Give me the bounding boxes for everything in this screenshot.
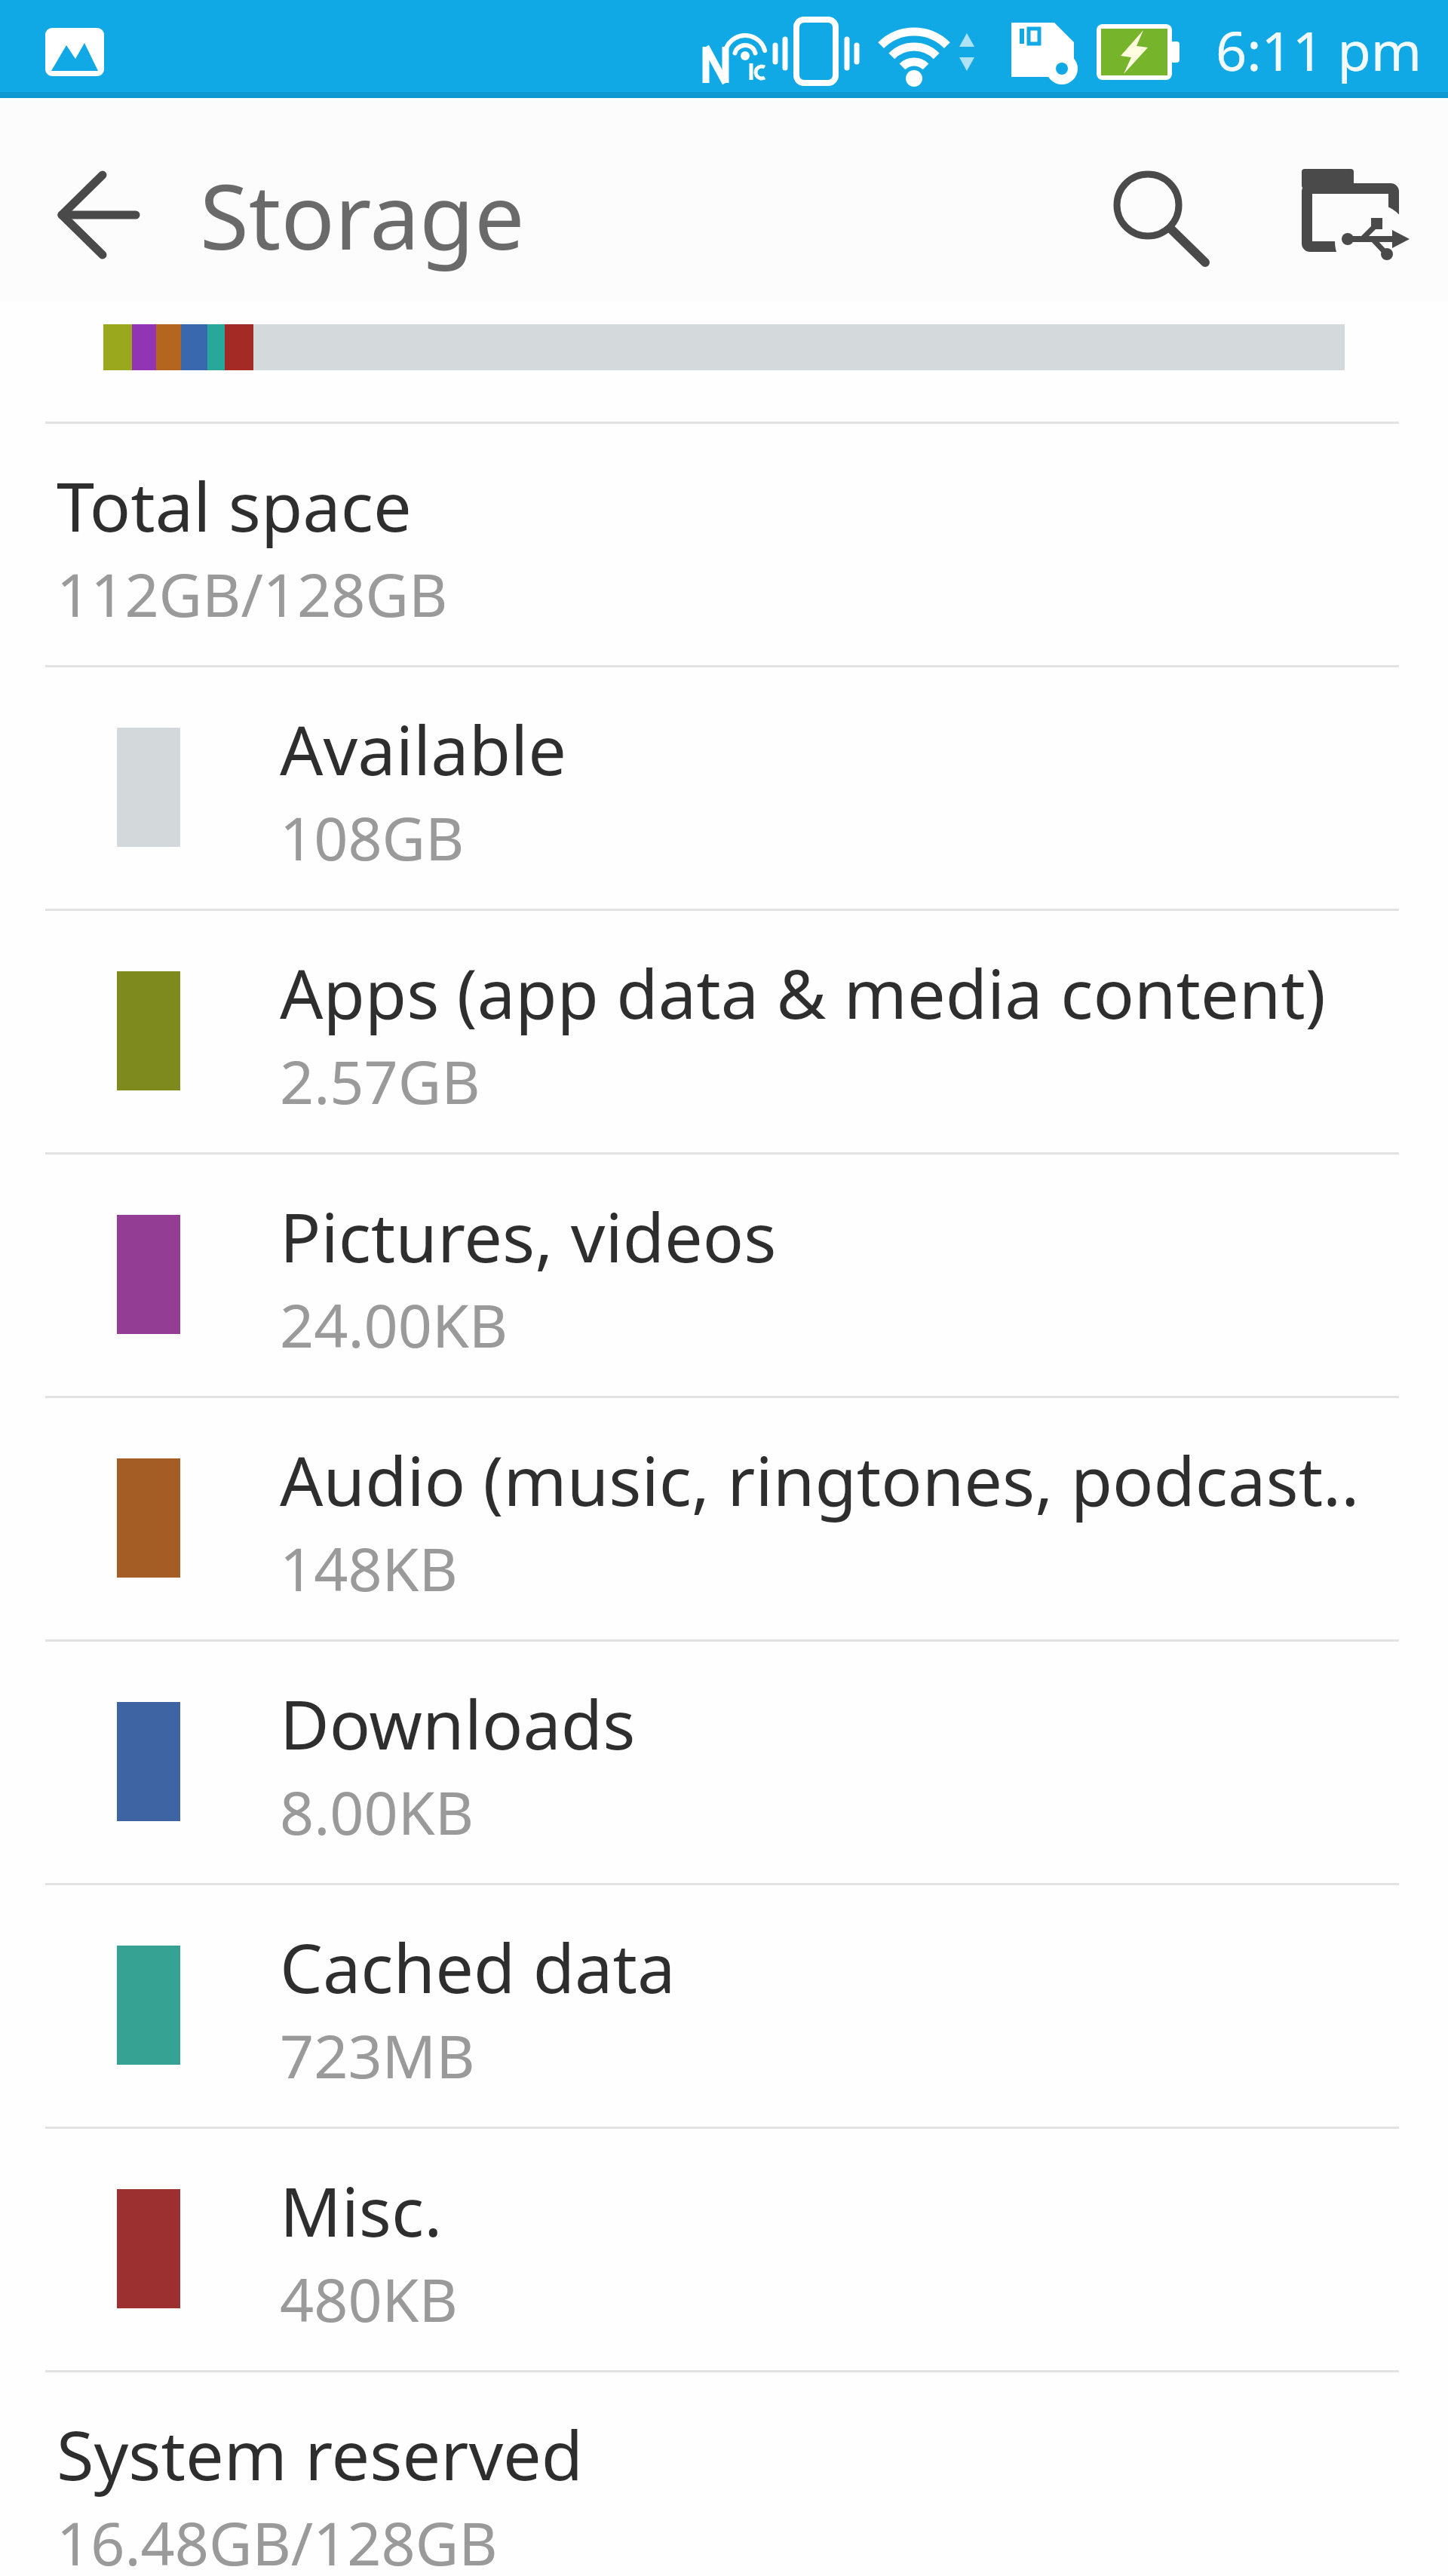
staticText: 16.48GB/128GB — [57, 2502, 498, 2576]
button[interactable]: Apps (app data & media content) — [0, 909, 1448, 1152]
staticText: 723MB — [280, 2015, 475, 2096]
button[interactable]: Audio (music, ringtones, podcast.. — [0, 1396, 1448, 1639]
staticText: 24.00KB — [280, 1284, 508, 1366]
button[interactable] — [1275, 147, 1425, 275]
staticText: Total space — [57, 459, 412, 552]
staticText: 480KB — [280, 2259, 458, 2340]
button[interactable] — [1090, 147, 1214, 275]
staticText: Cached data — [280, 1921, 676, 2013]
staticText: 108GB — [280, 797, 465, 879]
staticText: 2.57GB — [280, 1041, 480, 1122]
staticText: Misc. — [280, 2164, 443, 2257]
button[interactable]: Total space — [0, 422, 1448, 665]
staticText: Downloads — [280, 1677, 636, 1770]
staticText: 6:11 pm — [1216, 13, 1422, 87]
staticText: 8.00KB — [280, 1771, 474, 1853]
staticText: Audio (music, ringtones, podcast.. — [280, 1434, 1360, 1526]
staticText: Available — [280, 703, 566, 796]
button[interactable]: System reserved — [0, 2370, 1448, 2576]
staticText: 112GB/128GB — [57, 554, 448, 635]
staticText: 148KB — [280, 1528, 458, 1609]
staticText: Storage — [200, 155, 525, 276]
button[interactable]: Misc. — [0, 2127, 1448, 2370]
staticText: Pictures, videos — [280, 1190, 777, 1283]
button[interactable]: Cached data — [0, 1883, 1448, 2127]
staticText: System reserved — [57, 2408, 584, 2501]
button[interactable] — [30, 151, 158, 279]
button[interactable]: Available — [0, 665, 1448, 909]
button[interactable]: Pictures, videos — [0, 1152, 1448, 1396]
staticText: Apps (app data & media content) — [280, 946, 1326, 1039]
button[interactable]: Downloads — [0, 1639, 1448, 1883]
